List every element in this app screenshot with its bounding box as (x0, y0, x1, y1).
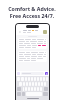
staticText: Free Access 24/7. (0, 12, 64, 19)
button[interactable]: Send (45, 72, 48, 75)
button[interactable] (18, 51, 47, 62)
button[interactable] (21, 72, 44, 75)
staticText: Comfort & Advice. (0, 5, 64, 12)
button[interactable]: Profile (43, 30, 47, 34)
button[interactable]: Back (18, 30, 22, 34)
button[interactable] (18, 38, 47, 49)
